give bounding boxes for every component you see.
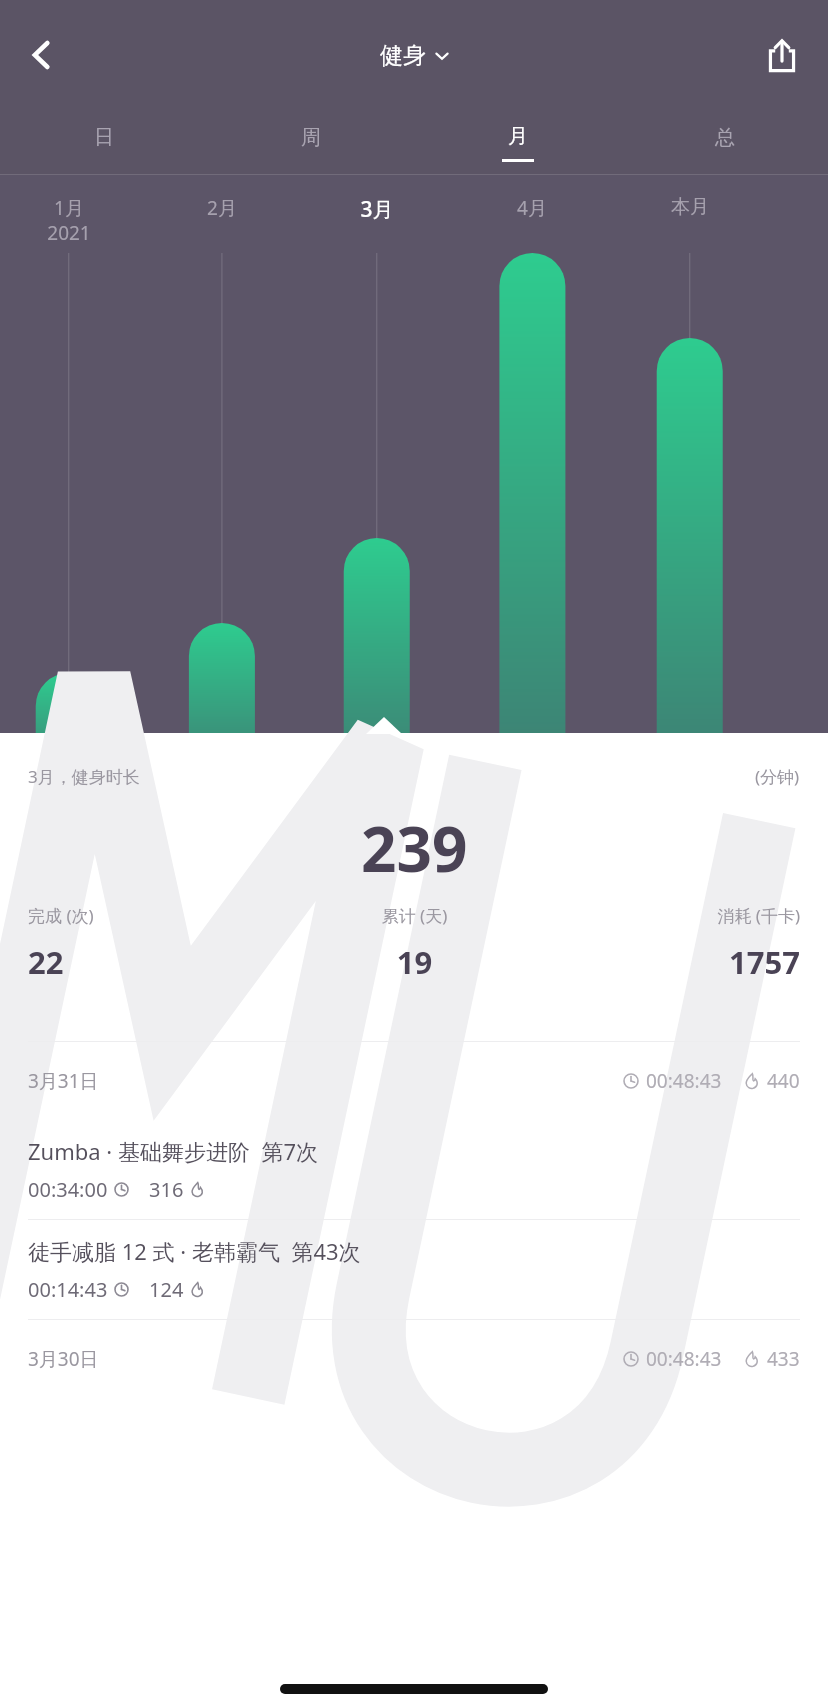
button[interactable]: 3月31日: [0, 1042, 828, 1120]
staticText: 4月: [517, 195, 547, 221]
staticText: 徒手减脂 12 式 · 老韩霸气 第43次: [28, 1236, 361, 1266]
staticText: 3月31日: [28, 1068, 99, 1094]
staticText: 累计 (天): [286, 904, 543, 927]
button[interactable]: 健身: [380, 41, 449, 70]
staticText: 316: [149, 1176, 184, 1203]
staticText: 健身: [380, 41, 426, 70]
staticText: 00:14:43: [28, 1276, 108, 1303]
staticText: 22: [28, 941, 286, 983]
button[interactable]: Back: [6, 19, 78, 91]
staticText: 总: [715, 125, 735, 150]
button[interactable]: Share: [746, 19, 818, 91]
staticText: 日: [94, 125, 114, 150]
button[interactable]: 3月30日: [0, 1320, 828, 1398]
staticText: 00:48:43: [646, 1346, 722, 1372]
staticText: 月: [508, 124, 528, 149]
button[interactable]: 周: [207, 110, 414, 175]
button[interactable]: 日: [0, 110, 207, 175]
staticText: 2月: [207, 195, 237, 221]
staticText: 124: [149, 1276, 184, 1303]
staticText: 3月30日: [28, 1346, 99, 1372]
staticText: 1757: [543, 941, 800, 983]
staticText: 433: [767, 1346, 800, 1372]
button[interactable]: 总: [621, 110, 828, 175]
staticText: 完成 (次): [28, 904, 286, 927]
staticText: 00:48:43: [646, 1068, 722, 1094]
staticText: 本月: [671, 195, 709, 219]
button[interactable]: Zumba · 基础舞步进阶 第7次: [0, 1120, 828, 1219]
staticText: 00:34:00: [28, 1176, 108, 1203]
staticText: 周: [301, 125, 321, 150]
staticText: Zumba · 基础舞步进阶 第7次: [28, 1136, 318, 1166]
staticText: 239: [361, 806, 468, 890]
staticText: 440: [767, 1068, 800, 1094]
staticText: (分钟): [755, 765, 800, 788]
staticText: 3月，健身时长: [28, 765, 140, 788]
button[interactable]: 月: [414, 110, 621, 175]
staticText: 1月 2021: [47, 195, 91, 245]
staticText: 消耗 (千卡): [543, 904, 800, 927]
staticText: 3月: [360, 195, 394, 224]
button[interactable]: 徒手减脂 12 式 · 老韩霸气 第43次: [0, 1220, 828, 1319]
staticText: 19: [286, 941, 543, 983]
